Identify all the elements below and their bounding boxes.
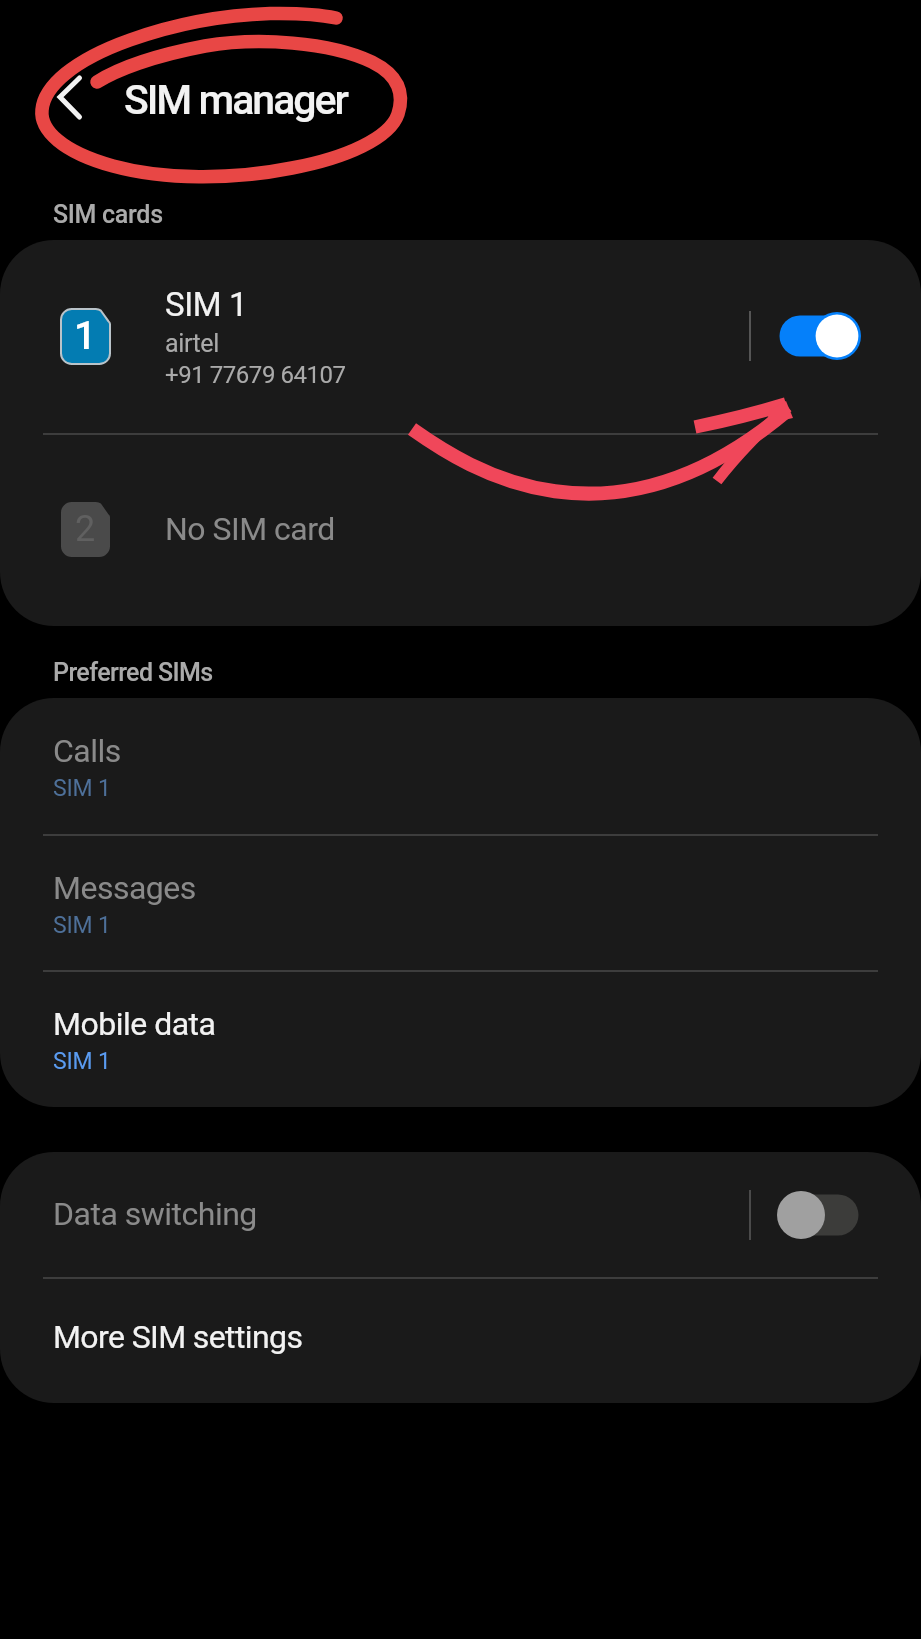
staticText: 1 xyxy=(74,313,97,359)
button[interactable]: Messages xyxy=(0,835,921,971)
staticText: Preferred SIMs xyxy=(53,658,213,687)
button[interactable]: 2 xyxy=(0,434,921,626)
staticText: Data switching xyxy=(53,1195,257,1233)
staticText: No SIM card xyxy=(165,510,335,548)
staticText: More SIM settings xyxy=(53,1318,303,1356)
staticText: SIM cards xyxy=(53,200,163,229)
staticText: SIM 1 xyxy=(53,912,111,939)
button[interactable]: Switch off xyxy=(776,1191,861,1239)
staticText: Mobile data xyxy=(53,1005,216,1043)
staticText: Calls xyxy=(53,732,121,770)
staticText: 2 xyxy=(75,508,96,550)
button[interactable]: Calls xyxy=(0,698,921,835)
button[interactable]: Mobile data xyxy=(0,971,921,1107)
button[interactable]: Navigate up xyxy=(40,66,100,130)
staticText: SIM 1 xyxy=(165,285,248,324)
button[interactable]: Data switching xyxy=(0,1152,921,1278)
staticText: Messages xyxy=(53,869,196,907)
button[interactable]: Switch on xyxy=(776,312,861,360)
button[interactable]: More SIM settings xyxy=(0,1278,921,1403)
staticText: SIM 1 xyxy=(53,775,111,802)
button[interactable]: 1 xyxy=(0,240,921,434)
staticText: SIM 1 xyxy=(53,1048,111,1075)
staticText: airtel xyxy=(165,329,219,358)
staticText: SIM manager xyxy=(124,76,347,124)
staticText: +91 77679 64107 xyxy=(165,361,346,389)
